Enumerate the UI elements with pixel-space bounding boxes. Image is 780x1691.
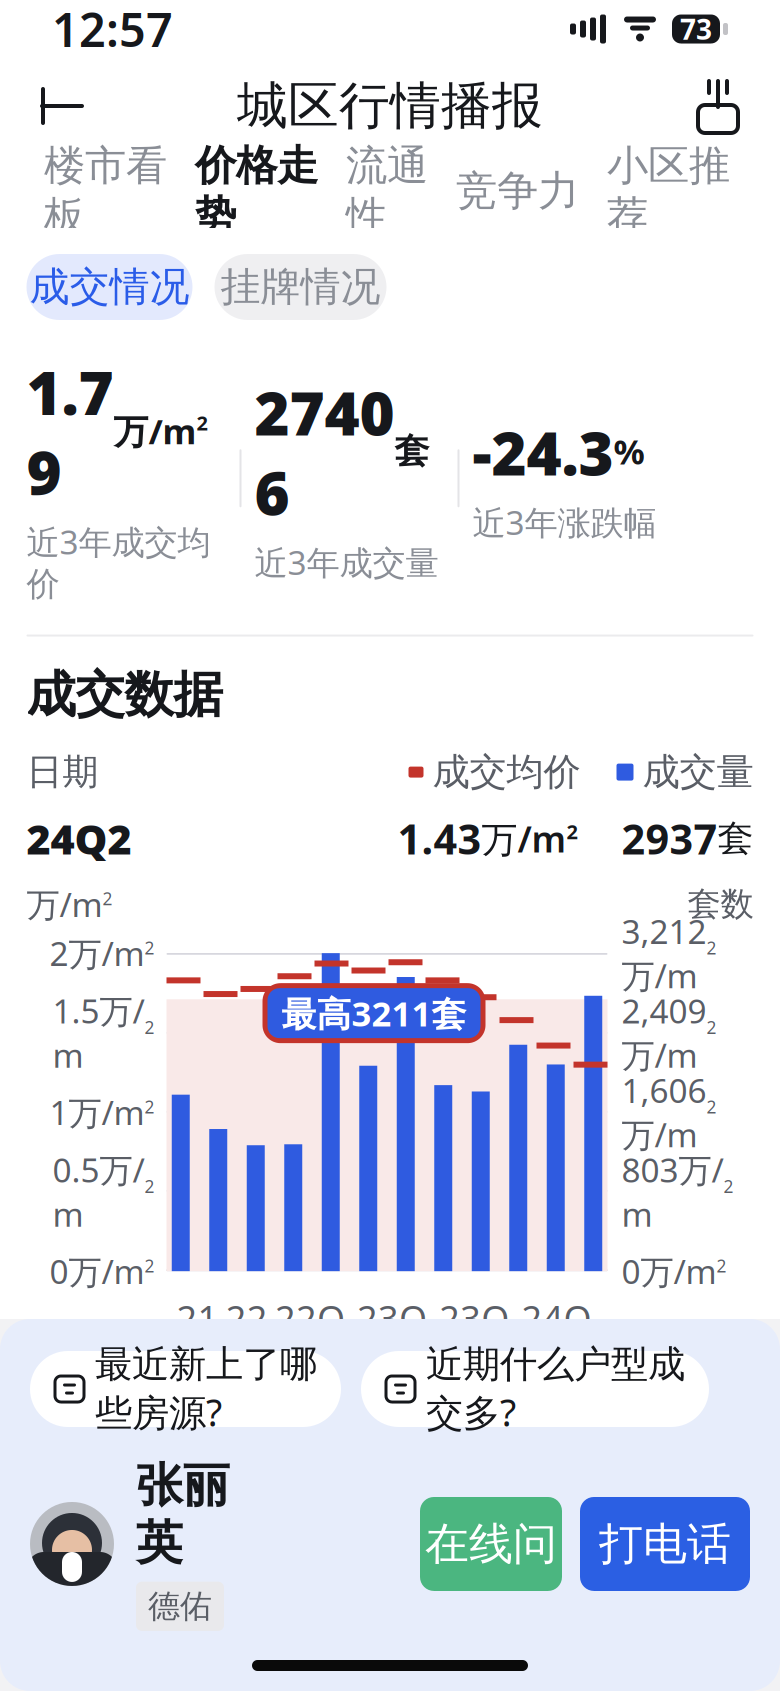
staticText: 3,212万/m xyxy=(621,909,706,997)
button[interactable]: 挂牌情况 xyxy=(214,254,386,320)
button[interactable]: 小区推荐 xyxy=(593,159,744,223)
button[interactable]: 近2年 xyxy=(390,1425,548,1489)
staticText: 城区行情播报 xyxy=(237,75,543,137)
staticText: 价格走势 xyxy=(195,140,318,242)
staticText: 近半年 xyxy=(97,1434,208,1480)
staticText: 成交量 xyxy=(642,749,753,795)
staticText: 近期什么户型成交多? xyxy=(426,1341,685,1437)
staticText: 2 xyxy=(706,936,716,959)
staticText: 成交均价 xyxy=(432,749,580,795)
staticText: 在线问 xyxy=(425,1517,557,1571)
staticText: 竞争力 xyxy=(456,166,579,216)
button[interactable]: 问 xyxy=(26,1526,753,1606)
staticText: 1,606万/m xyxy=(621,1068,706,1156)
staticText: % xyxy=(613,428,644,474)
staticText: 套数 xyxy=(687,884,753,924)
staticText: 2 xyxy=(102,887,112,910)
staticText: 2 xyxy=(144,936,154,959)
staticText: 0万/m xyxy=(49,1249,144,1293)
staticText: 2 xyxy=(706,1016,716,1039)
staticText: 德佑 xyxy=(148,1587,212,1626)
staticText: 万/m xyxy=(26,882,102,926)
staticText: 近3年成交量 xyxy=(254,540,438,584)
staticText: 0.5万/m xyxy=(52,1147,144,1236)
staticText: 流通性 xyxy=(346,140,428,242)
staticText: 803万/m xyxy=(621,1147,723,1236)
staticText: 12:57 xyxy=(52,0,173,60)
staticText: 1.43 xyxy=(397,811,481,866)
staticText: 0万/m xyxy=(621,1249,716,1293)
staticText: 套 xyxy=(394,430,429,472)
button[interactable]: 打电话 xyxy=(580,1497,750,1591)
button[interactable]: Share xyxy=(682,70,754,142)
staticText: 23Q2 xyxy=(357,1294,439,1390)
button[interactable]: Back xyxy=(26,70,98,142)
staticText: 咨询经纪人 xyxy=(518,1542,713,1589)
staticText: 1.79 xyxy=(26,352,113,511)
staticText: 22Q2 xyxy=(226,1294,275,1390)
staticText: 近3年成交均价 xyxy=(26,519,210,605)
button[interactable]: 近3年 xyxy=(548,1425,706,1489)
staticText: 近3年涨跌幅 xyxy=(472,500,656,544)
staticText: 成交数据 xyxy=(26,665,222,725)
staticText: 成交情况 xyxy=(29,262,189,311)
staticText: 2 xyxy=(144,1175,154,1198)
staticText: 24Q2 xyxy=(521,1294,603,1390)
staticText: 21Q4 xyxy=(176,1294,225,1390)
staticText: › xyxy=(718,1537,731,1594)
staticText: 万/m xyxy=(113,408,196,454)
button[interactable]: 在线问 xyxy=(420,1497,562,1591)
button[interactable]: 楼市看板 xyxy=(30,159,181,223)
staticText: 最高3211套 xyxy=(281,990,466,1036)
staticText: 1万/m xyxy=(49,1090,144,1134)
staticText: 挂牌情况 xyxy=(220,262,380,311)
staticText: 2 xyxy=(144,1016,154,1039)
staticText: 22Q4 xyxy=(275,1294,357,1390)
staticText: 2 xyxy=(196,409,207,436)
staticText: 最近新上了哪些房源? xyxy=(95,1341,317,1437)
button[interactable]: 竞争力 xyxy=(442,159,593,223)
staticText: 2 xyxy=(723,1175,733,1198)
staticText: 2万/m xyxy=(49,931,144,975)
staticText: 2 xyxy=(144,1254,154,1277)
staticText: 1.5万/m xyxy=(52,988,144,1077)
staticText: 2,409万/m xyxy=(621,988,706,1077)
button[interactable]: 成交情况 xyxy=(26,254,192,320)
staticText: 24Q2 xyxy=(26,811,131,866)
staticText: -24.3 xyxy=(472,412,613,492)
button[interactable]: 价格走势 xyxy=(181,159,332,223)
staticText: 打电话 xyxy=(599,1517,731,1571)
staticText: 2 xyxy=(566,818,577,845)
staticText: 问 xyxy=(51,1546,83,1585)
staticText: 73 xyxy=(680,10,712,48)
staticText: 2 xyxy=(716,1254,726,1277)
staticText: 楼市看板 xyxy=(44,140,167,242)
staticText: 万/m xyxy=(481,815,566,862)
staticText: 2 xyxy=(144,1095,154,1118)
staticText: 近3年成交均价跌了吗? 为什么跌? xyxy=(98,1513,499,1619)
staticText: 套 xyxy=(717,816,753,860)
staticText: 日期 xyxy=(26,750,98,794)
staticText: 2937 xyxy=(621,811,717,866)
staticText: 23Q4 xyxy=(439,1294,521,1390)
button[interactable]: 近半年 xyxy=(74,1425,232,1489)
staticText: 小区推荐 xyxy=(607,140,730,242)
button[interactable]: 最近新上了哪些房源? xyxy=(30,1351,341,1427)
button[interactable]: 流通性 xyxy=(332,159,442,223)
button[interactable]: 近期什么户型成交多? xyxy=(361,1351,709,1427)
staticText: 2 xyxy=(706,1095,716,1118)
staticText: 张丽英 xyxy=(136,1457,230,1572)
staticText: 27406 xyxy=(254,372,394,532)
